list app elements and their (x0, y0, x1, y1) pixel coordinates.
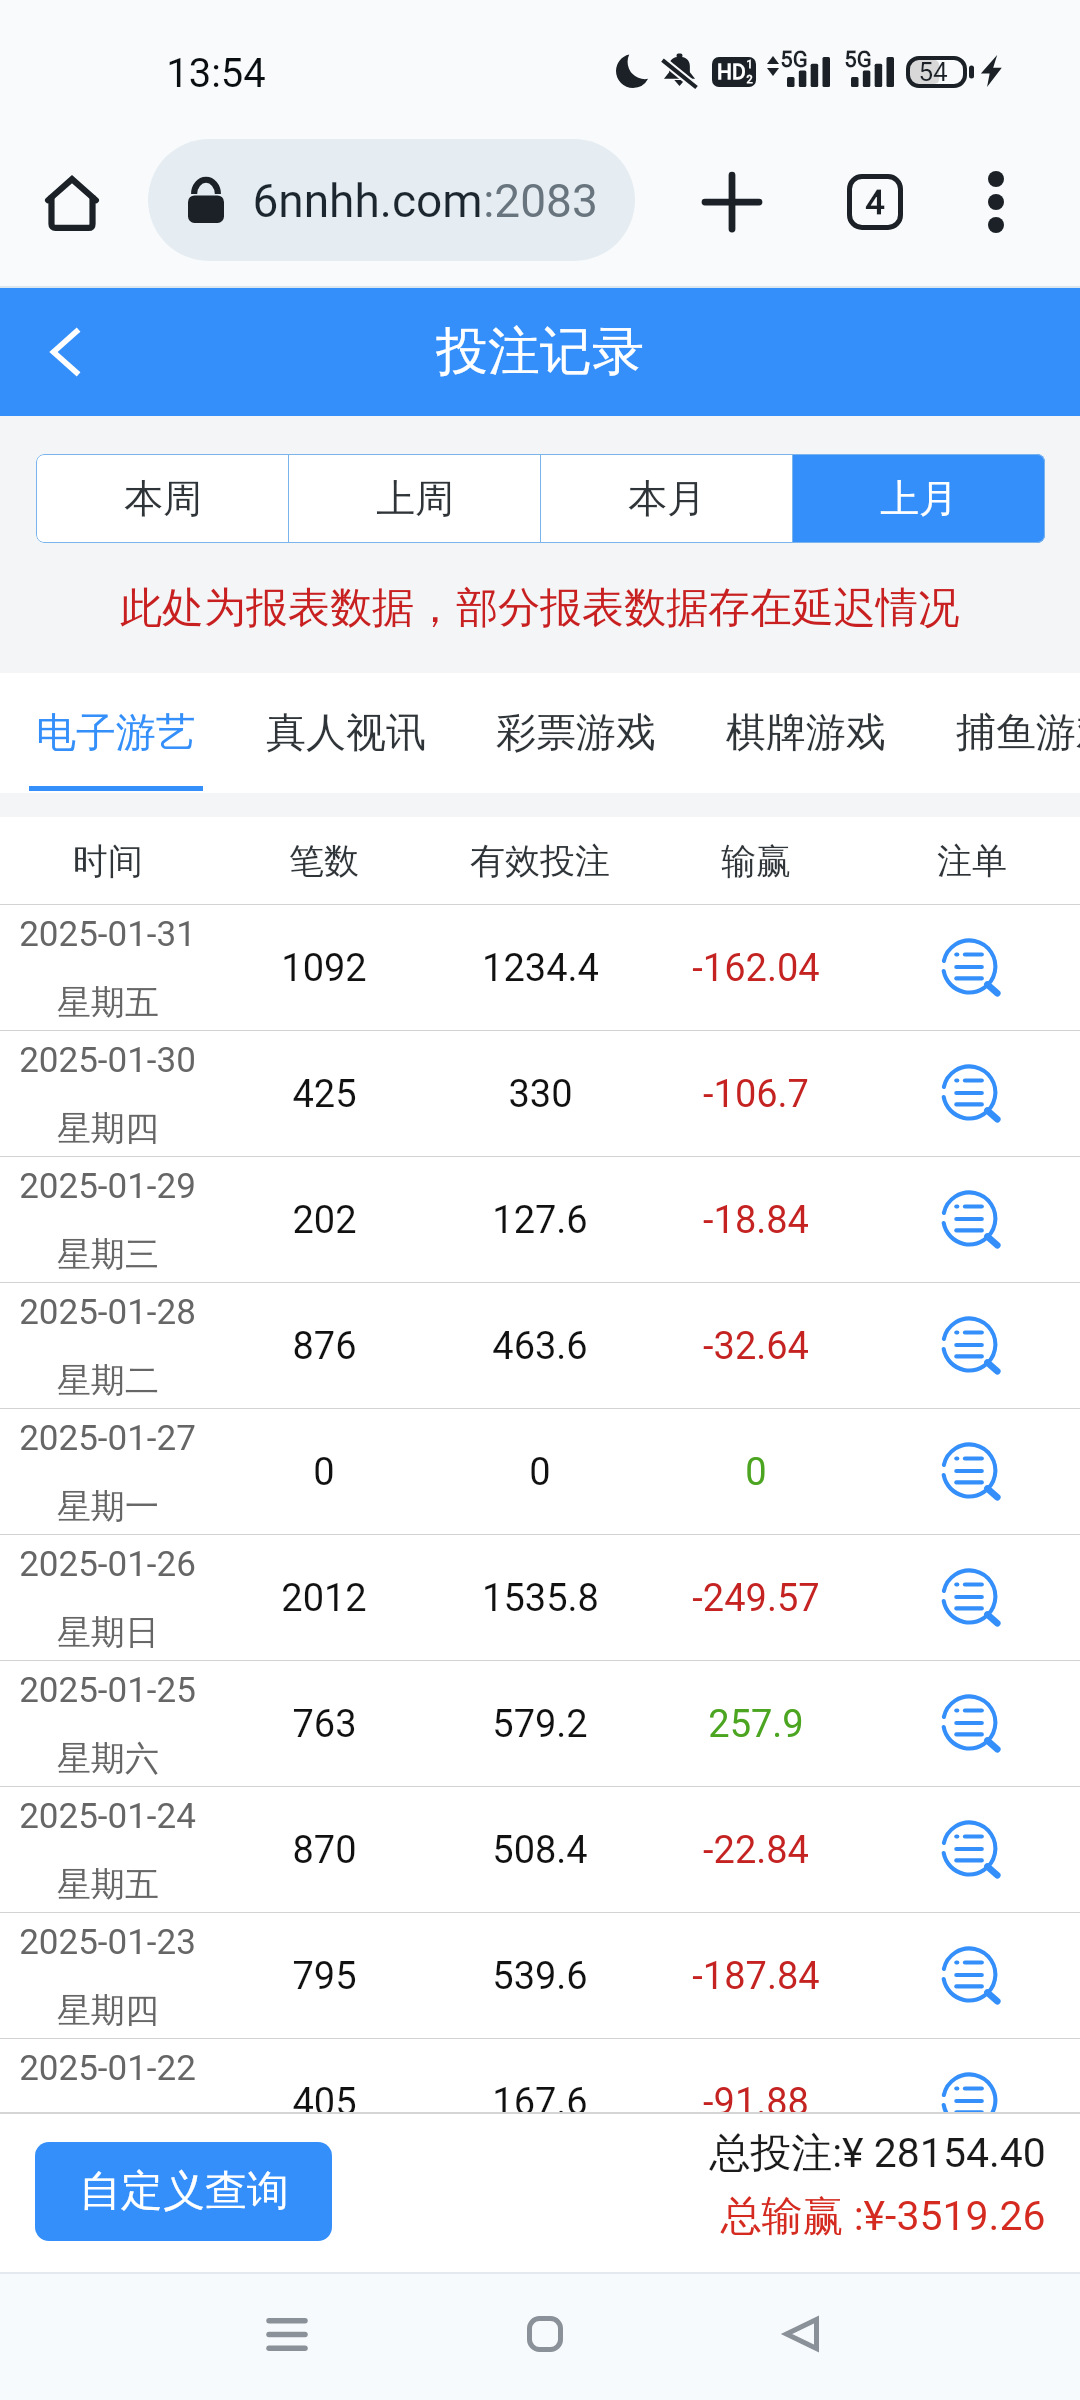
staticText: 投注记录 (436, 319, 644, 385)
button[interactable]: 本周 (36, 454, 289, 543)
staticText: 2025-01-29 (19, 1166, 196, 1207)
staticText: 电子游艺 (36, 707, 196, 757)
button[interactable]: 捕鱼游戏 (936, 673, 1080, 791)
button[interactable]: View bet details (930, 926, 1014, 1010)
staticText: 星期五 (57, 1863, 159, 1906)
staticText: 星期一 (57, 1485, 159, 1528)
button[interactable]: View bet details (930, 1682, 1014, 1766)
button[interactable]: 2025-01-29 (0, 1157, 1080, 1283)
staticText: 星期六 (57, 1737, 159, 1780)
staticText: 5G (780, 47, 808, 73)
staticText: 425 (292, 1072, 357, 1117)
staticText: 4 (865, 182, 885, 222)
staticText: 时间 (73, 839, 143, 883)
button[interactable]: View bet details (930, 1304, 1014, 1388)
button[interactable]: 2025-01-22 (0, 2039, 1080, 2112)
staticText: 真人视讯 (266, 707, 426, 757)
staticText: 有效投注 (470, 839, 610, 883)
button[interactable]: 6nnhh.com (148, 139, 635, 261)
staticText: -187.84 (692, 1954, 820, 1999)
staticText: 彩票游戏 (496, 707, 656, 757)
staticText: 星期三 (57, 1233, 159, 1276)
staticText: 405 (292, 2080, 357, 2112)
staticText: 1535.8 (482, 1576, 599, 1621)
staticText: 棋牌游戏 (726, 707, 886, 757)
staticText: 此处为报表数据，部分报表数据存在延迟情况 (120, 582, 960, 635)
staticText: 星期四 (57, 1107, 159, 1150)
button[interactable]: 2025-01-28 (0, 1283, 1080, 1409)
button[interactable]: 2025-01-30 (0, 1031, 1080, 1157)
staticText: -91.88 (703, 2080, 809, 2112)
staticText: 输赢 (721, 839, 791, 883)
staticText: 508.4 (492, 1828, 588, 1873)
staticText: 2 (746, 73, 753, 86)
staticText: :2083 (483, 174, 598, 228)
button[interactable]: 彩票游戏 (476, 673, 676, 791)
staticText: 1092 (281, 946, 367, 991)
staticText: 579.2 (492, 1702, 588, 1747)
button[interactable]: 自定义查询 (35, 2142, 332, 2241)
button[interactable]: View bet details (930, 1178, 1014, 1262)
button[interactable]: 2025-01-26 (0, 1535, 1080, 1661)
button[interactable]: View bet details (930, 2060, 1014, 2112)
staticText: 星期日 (57, 1611, 159, 1654)
staticText: -18.84 (703, 1198, 809, 1243)
staticText: 笔数 (289, 839, 359, 883)
staticText: 2025-01-31 (19, 914, 196, 955)
button[interactable]: 2025-01-31 (0, 905, 1080, 1031)
button[interactable]: 上周 (289, 454, 541, 543)
staticText: 星期二 (57, 1359, 159, 1402)
staticText: 自定义查询 (79, 2165, 289, 2218)
button[interactable]: 真人视讯 (246, 673, 446, 791)
button[interactable]: Tabs (831, 158, 919, 246)
button[interactable]: Home (30, 161, 114, 245)
staticText: 本周 (124, 474, 202, 523)
button[interactable]: Home (490, 2279, 600, 2389)
staticText: 2012 (281, 1576, 367, 1621)
staticText: 0 (745, 1450, 767, 1495)
button[interactable]: 2025-01-23 (0, 1913, 1080, 2039)
button[interactable]: View bet details (930, 1556, 1014, 1640)
staticText: HD (717, 60, 746, 85)
staticText: 2025-01-30 (19, 1040, 196, 1081)
staticText: 330 (508, 1072, 573, 1117)
staticText: 2025-01-28 (19, 1292, 196, 1333)
staticText: 2025-01-27 (19, 1418, 196, 1459)
button[interactable]: 电子游艺 (16, 673, 216, 791)
button[interactable]: Back (746, 2279, 856, 2389)
staticText: 上月 (880, 474, 958, 523)
button[interactable]: 本月 (541, 454, 793, 543)
button[interactable]: View bet details (930, 1052, 1014, 1136)
staticText: 795 (292, 1954, 357, 1999)
staticText: 2025-01-22 (19, 2048, 196, 2089)
staticText: -106.7 (703, 1072, 809, 1117)
staticText: 2025-01-25 (19, 1670, 196, 1711)
button[interactable]: View bet details (930, 1934, 1014, 2018)
staticText: 本月 (628, 474, 706, 523)
button[interactable]: View bet details (930, 1808, 1014, 1892)
staticText: 星期五 (57, 981, 159, 1024)
button[interactable]: Back (24, 309, 110, 395)
button[interactable]: 上月 (793, 454, 1045, 543)
staticText: 上周 (376, 474, 454, 523)
button[interactable]: Recent apps (231, 2279, 341, 2389)
button[interactable]: New tab (688, 158, 776, 246)
staticText: -32.64 (703, 1324, 809, 1369)
staticText: 2025-01-24 (19, 1796, 196, 1837)
staticText: 539.6 (492, 1954, 588, 1999)
button[interactable]: 2025-01-27 (0, 1409, 1080, 1535)
staticText: 总投注:¥ 28154.40 (709, 2128, 1046, 2180)
button[interactable]: 2025-01-25 (0, 1661, 1080, 1787)
staticText: 167.6 (492, 2080, 588, 2112)
staticText: 54 (918, 57, 948, 87)
button[interactable]: View bet details (930, 1430, 1014, 1514)
staticText: 202 (292, 1198, 357, 1243)
button[interactable]: 棋牌游戏 (706, 673, 906, 791)
staticText: 0 (529, 1450, 551, 1495)
staticText: 6nnhh.com (252, 174, 483, 228)
staticText: 5G (844, 47, 872, 73)
staticText: 总输赢 :¥-3519.26 (720, 2191, 1046, 2243)
button[interactable]: More options (952, 158, 1040, 246)
button[interactable]: 2025-01-24 (0, 1787, 1080, 1913)
staticText: 注单 (937, 839, 1007, 883)
